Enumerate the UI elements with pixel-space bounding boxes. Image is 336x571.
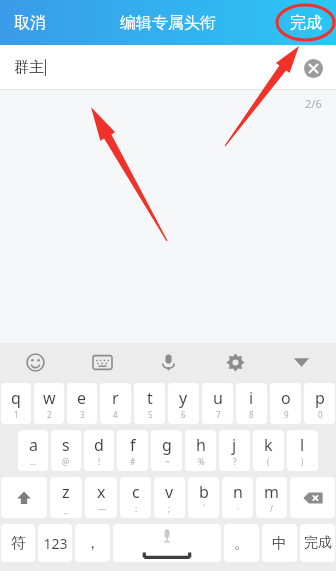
staticText: s: [62, 434, 70, 456]
staticText: 2: [47, 409, 52, 420]
button[interactable]: w: [34, 383, 64, 424]
staticText: e: [77, 387, 87, 409]
staticText: 3: [80, 409, 85, 420]
button[interactable]: i: [236, 383, 267, 424]
staticText: w: [43, 387, 56, 409]
button[interactable]: 中: [262, 524, 297, 562]
button[interactable]: 完成: [276, 3, 336, 43]
staticText: l: [300, 434, 305, 456]
button[interactable]: k: [253, 430, 284, 471]
staticText: 0: [318, 409, 323, 420]
button[interactable]: t: [134, 383, 165, 424]
button[interactable]: d: [84, 430, 114, 471]
staticText: m: [264, 481, 279, 503]
staticText: ~: [165, 456, 170, 467]
staticText: v: [165, 481, 174, 503]
button[interactable]: u: [202, 383, 233, 424]
button[interactable]: Emoji: [18, 345, 52, 379]
staticText: 2/6: [305, 96, 322, 111]
button[interactable]: 123: [38, 524, 72, 562]
button[interactable]: 符: [1, 524, 35, 562]
button[interactable]: Shift: [1, 477, 47, 518]
staticText: 群主: [14, 58, 44, 77]
staticText: @: [62, 456, 70, 467]
button[interactable]: y: [168, 383, 199, 424]
staticText: ...: [30, 456, 37, 467]
button[interactable]: Backspace: [290, 477, 335, 518]
button[interactable]: m: [256, 477, 287, 518]
staticText: —: [98, 503, 106, 514]
staticText: ): [301, 456, 304, 467]
button[interactable]: 取消: [0, 3, 60, 43]
staticText: 9: [284, 409, 289, 420]
staticText: d: [94, 434, 104, 456]
staticText: _: [64, 503, 68, 514]
staticText: z: [62, 481, 70, 503]
button[interactable]: 完成: [300, 524, 335, 562]
staticText: t: [147, 387, 153, 409]
staticText: q: [11, 387, 21, 409]
staticText: 7: [216, 409, 221, 420]
staticText: #: [130, 456, 136, 467]
staticText: 8: [249, 409, 254, 420]
staticText: a: [29, 434, 38, 456]
staticText: 。: [234, 534, 249, 553]
button[interactable]: p: [304, 383, 335, 424]
staticText: 中: [272, 534, 287, 553]
staticText: 完成: [290, 13, 322, 33]
button[interactable]: s: [51, 430, 81, 471]
staticText: /: [270, 503, 273, 514]
button[interactable]: l: [287, 430, 318, 471]
staticText: y: [179, 387, 188, 409]
button[interactable]: c: [120, 477, 151, 518]
button[interactable]: q: [1, 383, 31, 424]
button[interactable]: a: [18, 430, 48, 471]
staticText: 编辑专属头衔: [120, 13, 216, 33]
button[interactable]: e: [67, 383, 97, 424]
button[interactable]: o: [270, 383, 301, 424]
button[interactable]: x: [85, 477, 117, 518]
staticText: 6: [181, 409, 186, 420]
button[interactable]: Voice input: [151, 345, 185, 379]
button[interactable]: g: [151, 430, 182, 471]
button[interactable]: h: [185, 430, 216, 471]
staticText: !: [98, 456, 101, 467]
staticText: %: [198, 456, 205, 467]
staticText: f: [130, 434, 136, 456]
button[interactable]: Hide keyboard: [284, 345, 318, 379]
button[interactable]: Clear text: [298, 53, 328, 83]
staticText: u: [213, 387, 223, 409]
staticText: 取消: [14, 13, 46, 33]
button[interactable]: n: [222, 477, 253, 518]
button[interactable]: Settings: [218, 345, 252, 379]
staticText: `: [203, 503, 206, 514]
button[interactable]: Keyboard layout: [85, 345, 119, 379]
button[interactable]: 。: [224, 524, 259, 562]
staticText: j: [232, 434, 237, 456]
button[interactable]: r: [100, 383, 131, 424]
button[interactable]: Space: [113, 524, 221, 562]
button[interactable]: v: [154, 477, 185, 518]
staticText: 符: [11, 534, 26, 553]
staticText: x: [97, 481, 106, 503]
staticText: 123: [43, 534, 68, 553]
staticText: 1: [14, 409, 19, 420]
staticText: c: [132, 481, 140, 503]
staticText: ·: [237, 503, 240, 514]
staticText: p: [315, 387, 325, 409]
button[interactable]: f: [117, 430, 148, 471]
staticText: n: [233, 481, 243, 503]
staticText: ;: [168, 503, 171, 514]
staticText: k: [264, 434, 273, 456]
staticText: r: [112, 387, 119, 409]
button[interactable]: b: [188, 477, 219, 518]
staticText: g: [162, 434, 172, 456]
button[interactable]: ，: [75, 524, 110, 562]
staticText: ，: [85, 534, 100, 553]
staticText: b: [199, 481, 209, 503]
staticText: o: [281, 387, 291, 409]
button[interactable]: z: [50, 477, 82, 518]
staticText: ?: [233, 456, 237, 467]
staticText: i: [249, 387, 254, 409]
button[interactable]: j: [219, 430, 250, 471]
